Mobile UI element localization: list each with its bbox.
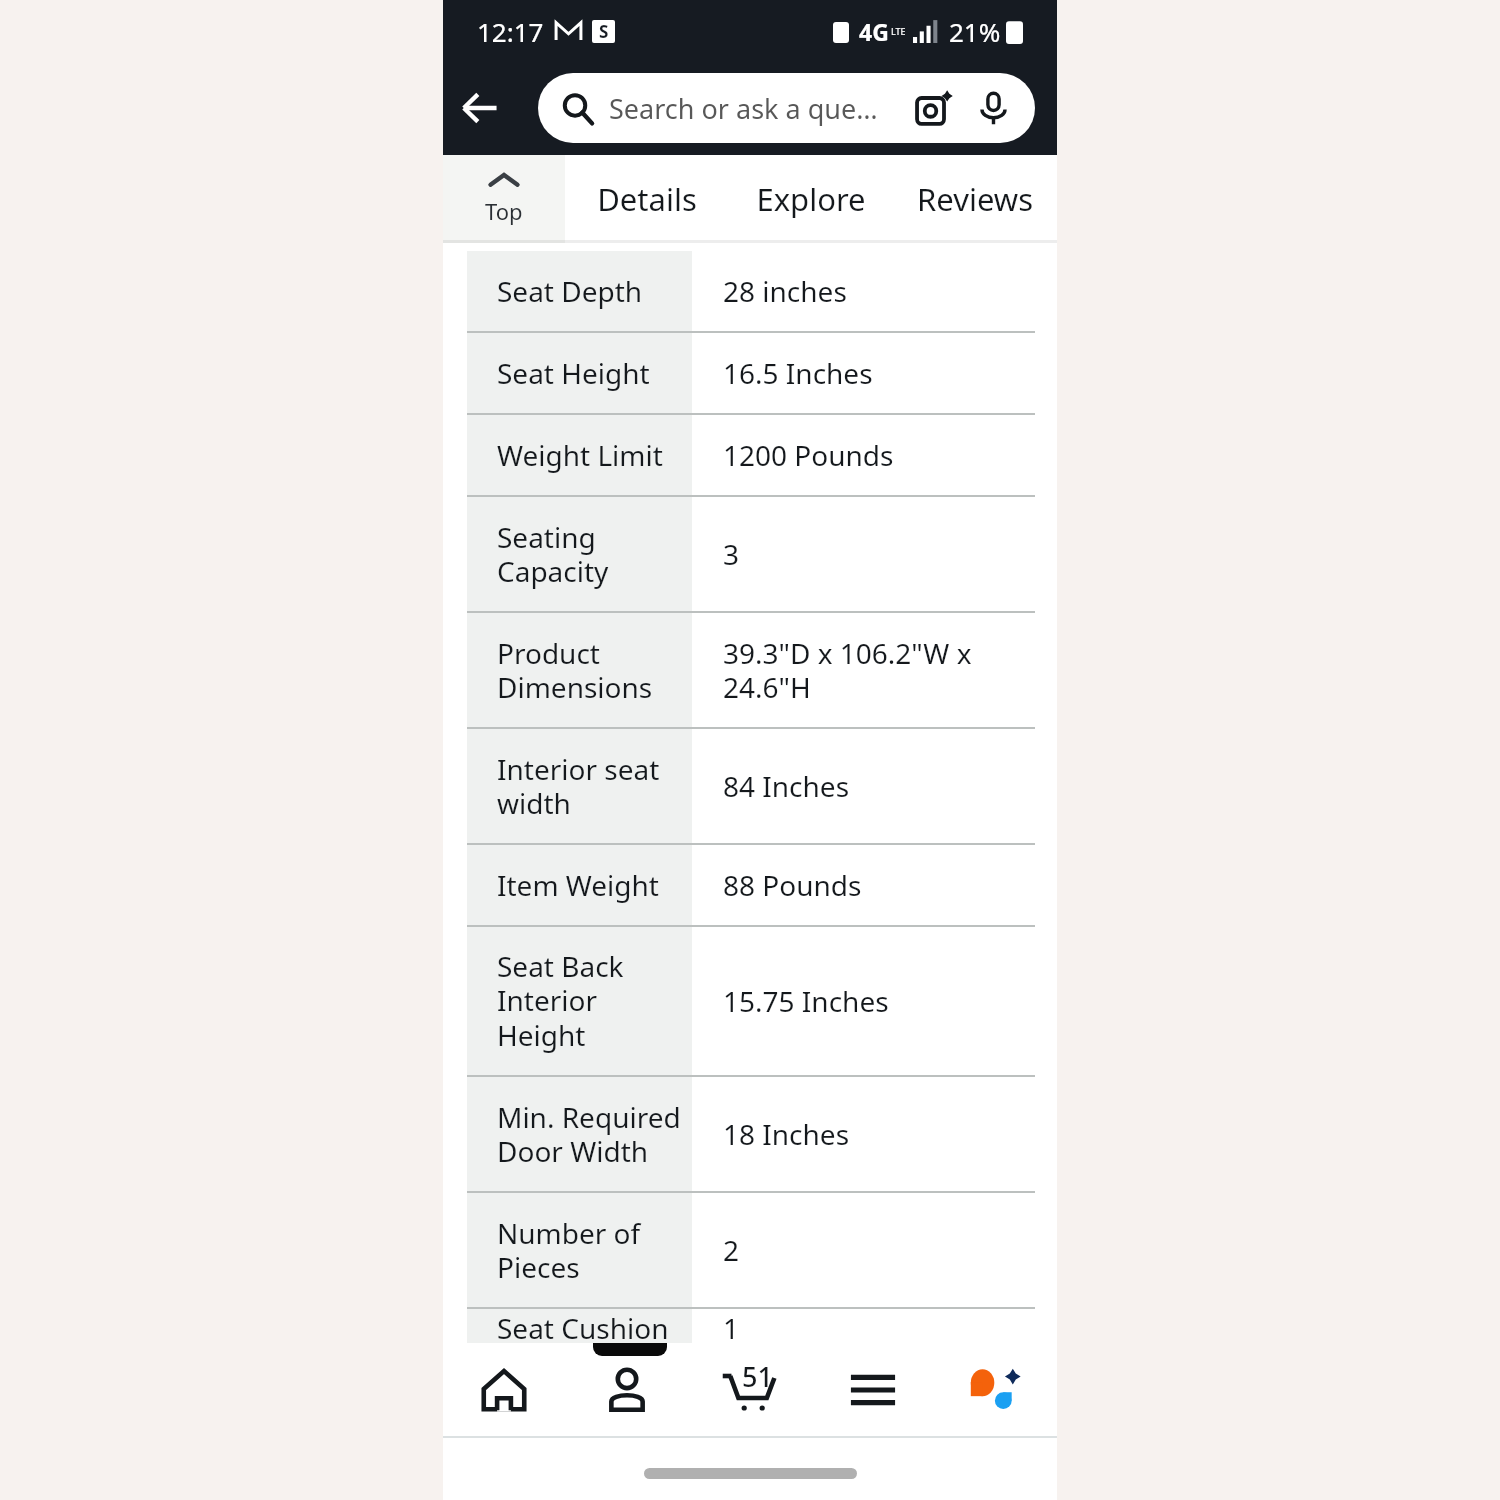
button[interactable]: Top (443, 155, 565, 243)
staticText: Seat Height (497, 354, 650, 392)
staticText: 2 (723, 1231, 740, 1269)
button[interactable]: Seat Cushion Quantity (467, 1309, 1033, 1343)
staticText: Explore (756, 178, 866, 220)
staticText: 16.5 Inches (723, 354, 873, 392)
button[interactable]: Search by image (911, 86, 955, 130)
staticText: 1200 Pounds (723, 436, 894, 474)
staticText: Seating Capacity (497, 518, 609, 591)
staticText: 4G (859, 16, 889, 47)
button[interactable]: Home (443, 1349, 565, 1431)
button[interactable]: Seat Depth (467, 251, 1033, 331)
button[interactable]: Number of Pieces (467, 1193, 1033, 1307)
button[interactable]: Min. Required Door Width (467, 1077, 1033, 1191)
button[interactable]: Product Dimensions (467, 613, 1033, 727)
button[interactable]: Explore (729, 155, 893, 243)
button[interactable]: Reviews (893, 155, 1057, 243)
staticText: 84 Inches (723, 767, 850, 805)
button[interactable]: Voice search (973, 88, 1013, 128)
staticText: 1 (723, 1309, 740, 1343)
staticText: Search or ask a que… (609, 90, 878, 127)
button[interactable]: Back (443, 71, 517, 145)
staticText: S (599, 20, 609, 43)
staticText: Details (597, 178, 697, 220)
staticText: Min. Required Door Width (497, 1098, 681, 1171)
staticText: 39.3"D x 106.2"W x 24.6"H (723, 634, 972, 707)
staticText: 18 Inches (723, 1115, 850, 1153)
staticText: LTE (891, 25, 906, 37)
staticText: 15.75 Inches (723, 982, 889, 1020)
staticText: Number of Pieces (497, 1214, 641, 1287)
staticText: Weight Limit (497, 436, 663, 474)
staticText: 21% (949, 14, 1001, 49)
staticText: 51 (742, 1358, 773, 1395)
button[interactable]: Menu (811, 1349, 934, 1431)
staticText: Product Dimensions (497, 634, 653, 707)
button[interactable]: Interior seat width (467, 729, 1033, 843)
staticText: Seat Cushion Quantity (497, 1309, 669, 1343)
staticText: Reviews (917, 178, 1033, 220)
staticText: 12:17 (477, 14, 544, 49)
button[interactable]: Item Weight (467, 845, 1033, 925)
button[interactable]: Seat Height (467, 333, 1033, 413)
button[interactable]: Search or ask a que… (538, 73, 1035, 143)
button[interactable]: Weight Limit (467, 415, 1033, 495)
button[interactable]: Cart, 51 items (688, 1349, 811, 1431)
staticText: 88 Pounds (723, 866, 862, 904)
staticText: Seat Back Interior Height (497, 947, 624, 1055)
button[interactable]: Seating Capacity (467, 497, 1033, 611)
button[interactable]: Account (565, 1349, 688, 1431)
staticText: Item Weight (497, 866, 659, 904)
staticText: Interior seat width (497, 750, 660, 823)
staticText: 3 (723, 535, 740, 573)
button[interactable]: Rufus assistant (934, 1349, 1057, 1431)
staticText: Top (485, 196, 523, 226)
button[interactable]: Seat Back Interior Height (467, 927, 1033, 1075)
staticText: Seat Depth (497, 272, 643, 310)
button[interactable]: Details (565, 155, 729, 243)
staticText: 28 inches (723, 272, 847, 310)
